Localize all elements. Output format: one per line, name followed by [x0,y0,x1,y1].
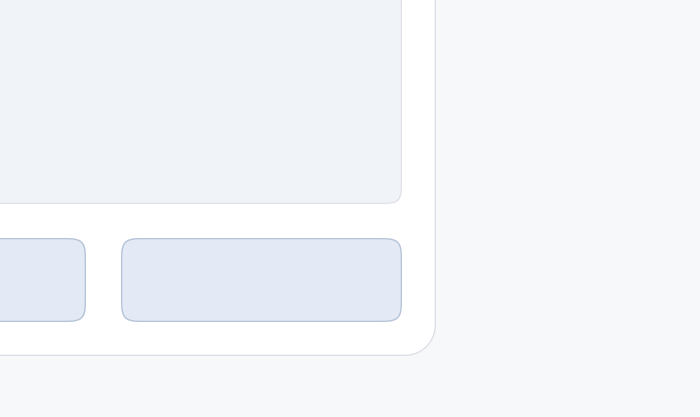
button[interactable]: Primary action [121,238,402,322]
button[interactable]: Secondary action [0,238,86,322]
